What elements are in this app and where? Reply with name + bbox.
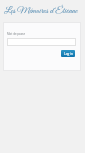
button[interactable]: Log in — [61, 50, 75, 57]
staticText: Log in — [64, 52, 73, 56]
button[interactable]: Mot de passe — [7, 38, 76, 46]
button[interactable]: Les Mémoires d'Étienne — [0, 1, 83, 21]
staticText: Les Mémoires d'Étienne — [4, 5, 78, 17]
staticText: Mot de passe — [7, 32, 26, 36]
